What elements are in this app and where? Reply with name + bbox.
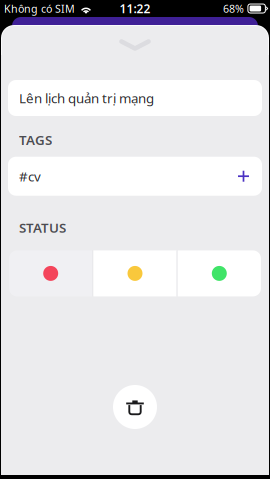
button[interactable]: Status — [93, 250, 177, 296]
staticText: #cv — [19, 167, 41, 185]
staticText: Lên lịch quản trị mạng — [19, 89, 154, 107]
staticText: STATUS — [19, 219, 66, 236]
button[interactable]: Delete — [113, 385, 157, 429]
staticText: Không có SIM — [4, 1, 75, 16]
staticText: 11:22 — [119, 0, 150, 16]
button[interactable]: Status — [178, 250, 261, 296]
staticText: TAGS — [19, 131, 52, 149]
staticText: 68% — [223, 1, 244, 16]
button[interactable]: #cv — [8, 157, 262, 196]
button[interactable]: Status — [9, 250, 92, 296]
